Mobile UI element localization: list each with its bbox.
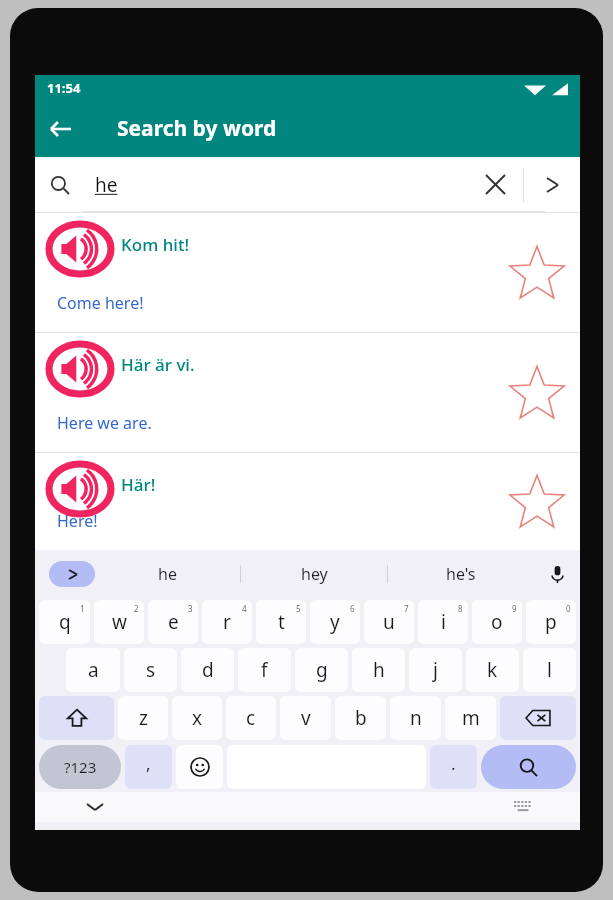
button[interactable]: Play audio [49, 344, 111, 394]
staticText: 11:54 [47, 79, 81, 97]
button[interactable]: n [390, 696, 441, 740]
button[interactable]: d [181, 648, 234, 692]
staticText: x [192, 705, 203, 731]
button[interactable]: u [364, 600, 414, 644]
staticText: 0 [566, 603, 571, 614]
button[interactable]: m [445, 696, 496, 740]
button[interactable]: Voice input [534, 550, 580, 598]
button[interactable]: Go [524, 157, 580, 212]
button[interactable]: i [418, 600, 468, 644]
staticText: n [410, 705, 422, 731]
button[interactable]: Play audio [35, 332, 580, 452]
button[interactable]: r [202, 600, 252, 644]
button[interactable]: b [335, 696, 386, 740]
button[interactable]: he [95, 550, 240, 598]
button[interactable]: f [238, 648, 291, 692]
staticText: 7 [404, 603, 409, 614]
button[interactable]: ?123 [39, 745, 121, 789]
staticText: Kom hit! [121, 233, 190, 256]
staticText: q [59, 609, 71, 635]
staticText: t [278, 609, 285, 635]
button[interactable]: e [148, 600, 198, 644]
staticText: o [491, 609, 503, 635]
staticText: w [112, 609, 127, 635]
button[interactable]: Backspace [500, 696, 576, 740]
button[interactable]: q [39, 600, 90, 644]
staticText: s [146, 657, 156, 683]
button[interactable]: Shift [39, 696, 114, 740]
staticText: z [139, 705, 148, 731]
button[interactable]: hey [241, 550, 387, 598]
button[interactable]: j [409, 648, 462, 692]
button[interactable]: Favorite [506, 242, 568, 304]
button[interactable]: Search [35, 160, 85, 210]
button[interactable]: Favorite [506, 362, 568, 424]
button[interactable]: l [523, 648, 576, 692]
button[interactable]: Play audio [35, 212, 580, 332]
button[interactable]: t [256, 600, 306, 644]
staticText: l [547, 657, 552, 683]
button[interactable]: Play audio [35, 452, 580, 550]
staticText: Come here! [57, 292, 144, 314]
button[interactable]: Clear [467, 157, 523, 212]
staticText: Här! [121, 473, 156, 496]
button[interactable]: Expand suggestions [49, 561, 95, 587]
staticText: Here! [57, 510, 98, 532]
button[interactable]: Play audio [49, 464, 111, 514]
staticText: g [316, 657, 328, 683]
button[interactable]: v [280, 696, 331, 740]
button[interactable]: p [526, 600, 576, 644]
button[interactable]: . [430, 745, 477, 789]
staticText: e [168, 609, 179, 635]
staticText: h [373, 657, 385, 683]
button[interactable]: w [94, 600, 144, 644]
staticText: i [441, 609, 446, 635]
button[interactable]: Hide keyboard [85, 797, 105, 817]
staticText: 6 [350, 603, 355, 614]
staticText: Search by word [117, 114, 277, 143]
staticText: , [146, 752, 151, 775]
staticText: p [545, 609, 557, 635]
staticText: k [487, 657, 498, 683]
staticText: 4 [242, 603, 247, 614]
staticText: a [88, 657, 99, 683]
staticText: 1 [80, 603, 85, 614]
staticText: m [462, 705, 480, 731]
staticText: c [246, 705, 256, 731]
button[interactable]: Search [481, 745, 576, 789]
button[interactable]: Change keyboard [514, 801, 532, 813]
button[interactable]: a [66, 648, 120, 692]
button[interactable]: , [125, 745, 172, 789]
button[interactable]: Play audio [49, 224, 111, 274]
button[interactable]: s [124, 648, 177, 692]
staticText: y [330, 609, 340, 635]
staticText: r [223, 609, 231, 635]
button[interactable]: k [466, 648, 519, 692]
staticText: d [202, 657, 214, 683]
staticText: Here we are. [57, 412, 152, 434]
staticText: b [355, 705, 367, 731]
staticText: ?123 [64, 757, 97, 777]
staticText: he [95, 172, 118, 198]
button[interactable]: y [310, 600, 360, 644]
button[interactable]: Favorite [506, 471, 568, 533]
staticText: Här är vi. [121, 353, 195, 376]
staticText: j [433, 657, 438, 683]
staticText: f [261, 657, 268, 683]
button[interactable]: Back [35, 103, 87, 155]
staticText: u [383, 609, 395, 635]
staticText: v [301, 705, 311, 731]
button[interactable]: z [118, 696, 168, 740]
button[interactable]: g [295, 648, 348, 692]
button[interactable]: o [472, 600, 522, 644]
button[interactable]: he's [388, 550, 534, 598]
button[interactable]: h [352, 648, 405, 692]
staticText: . [451, 752, 456, 775]
button[interactable]: Emoji [176, 745, 223, 789]
staticText: he's [446, 563, 476, 585]
button[interactable]: x [172, 696, 222, 740]
staticText: 3 [188, 603, 193, 614]
staticText: hey [301, 563, 328, 585]
button[interactable]: c [226, 696, 276, 740]
